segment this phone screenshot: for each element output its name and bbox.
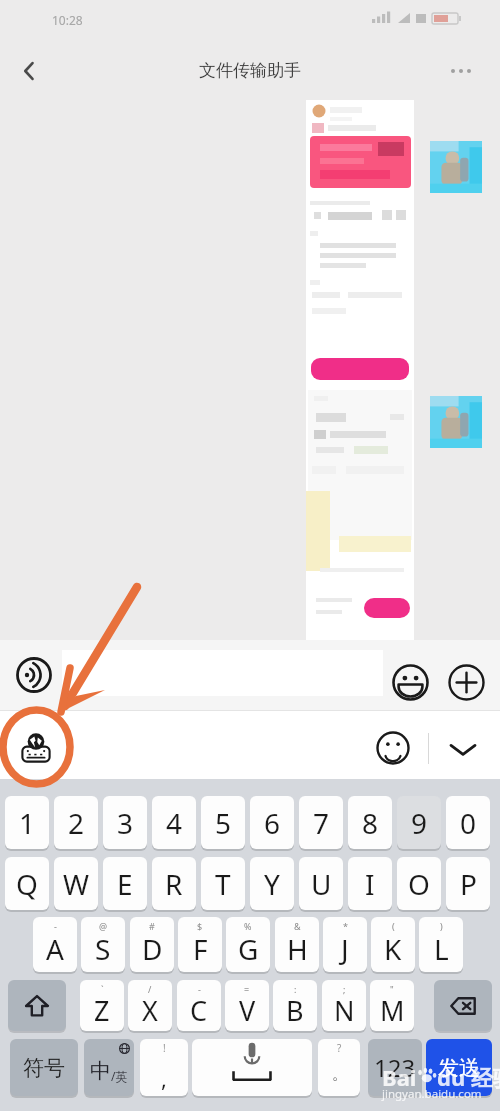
staticText: ) [440,920,443,932]
staticText: U [311,865,332,903]
staticText: T [215,865,231,903]
staticText: du 经验 [437,1062,500,1092]
button[interactable]: Image message [306,100,414,640]
button[interactable]: 发送 [426,1039,492,1096]
staticText: I [365,865,375,903]
staticText: = [244,983,250,995]
staticText: F [193,930,208,968]
staticText: 1 [19,804,36,842]
staticText: 6 [264,804,281,842]
button[interactable]: & [275,917,319,972]
button[interactable]: Contact avatar [430,396,482,448]
staticText: " [390,983,394,995]
button[interactable]: = [225,980,269,1031]
button[interactable]: 5 [201,796,245,849]
button[interactable]: ; [322,980,366,1031]
button[interactable]: 0 [446,796,490,849]
button[interactable]: # [130,917,174,972]
staticText: 符号 [23,1055,65,1081]
staticText: 7 [313,804,330,842]
staticText: 3 [117,804,134,842]
staticText: X [142,992,158,1029]
staticText: 文件传输助手 [199,60,301,81]
button[interactable]: W [54,857,98,910]
button[interactable]: 4 [152,796,196,849]
button[interactable]: Voice message [15,656,53,694]
button[interactable]: Switch input method [16,728,56,768]
button[interactable]: 2 [54,796,98,849]
button[interactable]: 1 [5,796,49,849]
staticText: O [408,865,430,903]
button[interactable]: Comma [140,1039,188,1096]
button[interactable]: Period [318,1039,360,1096]
staticText: 10:28 [52,12,83,28]
staticText: G [238,930,259,968]
staticText: % [244,920,252,932]
button[interactable]: R [152,857,196,910]
button[interactable]: Hide keyboard [443,729,483,769]
staticText: P [460,865,477,903]
staticText: * [343,920,348,932]
button[interactable]: O [397,857,441,910]
staticText: N [334,992,355,1029]
staticText: H [287,930,308,968]
staticText: W [63,865,90,903]
button[interactable]: 8 [348,796,392,849]
button[interactable]: Space and voice input [192,1039,312,1096]
button[interactable]: Y [250,857,294,910]
button[interactable]: 9 [397,796,441,849]
button[interactable]: : [273,980,317,1031]
staticText: A [46,930,64,968]
button[interactable]: 3 [103,796,147,849]
button[interactable]: 6 [250,796,294,849]
button[interactable]: @ [81,917,125,972]
staticText: /英 [111,1068,128,1084]
staticText: $ [197,920,203,932]
button[interactable]: - [33,917,77,972]
button[interactable]: % [226,917,270,972]
button[interactable]: " [370,980,414,1031]
button[interactable]: Contact avatar [430,141,482,193]
button[interactable]: 符号 [10,1039,78,1096]
button[interactable]: - [177,980,221,1031]
button[interactable]: * [323,917,367,972]
staticText: J [341,930,349,968]
button[interactable]: I [348,857,392,910]
button[interactable]: 7 [299,796,343,849]
button[interactable]: Back [8,50,50,92]
staticText: - [54,920,57,932]
staticText: L [434,930,449,968]
button[interactable]: ) [419,917,463,972]
button[interactable]: Chinese English toggle [84,1039,134,1096]
staticText: R [165,865,183,903]
button[interactable]: E [103,857,147,910]
button[interactable]: Emoji [390,662,431,703]
staticText: 2 [68,804,85,842]
button[interactable]: / [128,980,172,1031]
button[interactable]: T [201,857,245,910]
staticText: jingyan.baidu.com [382,1086,482,1102]
button[interactable]: More options [440,50,482,92]
button[interactable]: Q [5,857,49,910]
button[interactable]: 123 [368,1039,422,1096]
button[interactable]: More functions [446,662,487,703]
button[interactable]: Emoticons [374,729,412,767]
staticText: 中 [90,1058,111,1084]
staticText: ? [337,1041,342,1055]
button[interactable]: $ [178,917,222,972]
button[interactable]: Backspace [434,980,492,1031]
staticText: M [380,992,405,1029]
button[interactable]: P [446,857,490,910]
button[interactable]: Shift [8,980,66,1031]
staticText: ( [392,920,395,932]
staticText: B [286,992,304,1029]
staticText: S [95,930,111,968]
button[interactable]: ` [80,980,124,1031]
staticText: Y [264,865,280,903]
staticText: 123 [374,1051,416,1084]
staticText: ; [343,983,346,995]
staticText: - [198,983,201,995]
button[interactable]: Message input [62,650,383,696]
button[interactable]: U [299,857,343,910]
button[interactable]: ( [371,917,415,972]
